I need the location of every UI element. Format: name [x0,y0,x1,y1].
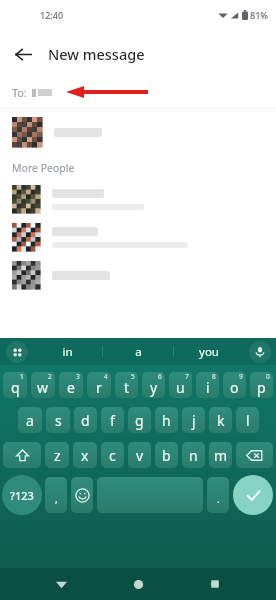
staticText: 2 [48,372,52,381]
staticText: 4 [104,372,108,381]
staticText: p [257,378,266,397]
button[interactable]: Send [233,475,273,515]
button[interactable]: . [207,477,229,513]
button[interactable]: y [142,372,165,398]
button[interactable] [0,117,276,147]
staticText: j [192,411,196,430]
staticText: c [109,446,116,465]
button[interactable]: s [46,407,70,433]
staticText: e [67,378,75,397]
button[interactable]: f [101,407,124,433]
staticText: b [162,446,171,465]
button[interactable]: z [45,442,69,468]
staticText: x [81,446,89,465]
button[interactable]: t [115,372,138,398]
staticText: r [96,378,102,397]
staticText: o [230,378,239,397]
button[interactable] [0,223,276,251]
button[interactable]: a [18,407,42,433]
button[interactable]: , [45,477,67,513]
button[interactable]: a [103,338,173,365]
staticText: a [135,344,142,360]
button[interactable]: w [31,372,55,398]
button[interactable]: you [174,338,244,365]
staticText: k [217,411,225,430]
button[interactable] [0,185,276,213]
button[interactable]: Backspace [236,442,273,468]
staticText: u [176,378,185,397]
staticText: 81% [250,9,268,21]
staticText: s [55,411,62,430]
button[interactable]: Home [125,571,151,597]
button[interactable]: h [155,407,178,433]
button[interactable]: r [87,372,111,398]
button[interactable]: Space [97,477,203,513]
staticText: f [110,411,115,430]
button[interactable]: k [209,407,232,433]
button[interactable]: j [182,407,205,433]
button[interactable]: Shift [3,442,41,468]
staticText: 1 [20,372,24,381]
button[interactable]: b [155,442,178,468]
staticText: z [54,446,61,465]
button[interactable]: i [196,372,219,398]
button[interactable]: Voice input [249,341,271,363]
staticText: 3 [76,372,80,381]
button[interactable]: in [32,338,102,365]
staticText: More People [12,161,75,175]
staticText: you [199,344,219,360]
staticText: h [162,411,171,430]
staticText: l [246,411,250,430]
button[interactable]: To: [0,76,276,108]
staticText: i [206,378,210,397]
button[interactable]: v [128,442,151,468]
button[interactable]: Keyboard options [6,341,28,363]
staticText: ?123 [10,488,34,503]
staticText: , [55,492,58,506]
staticText: 9 [239,372,243,381]
staticText: w [37,378,49,397]
staticText: 7 [185,372,189,381]
button[interactable]: m [209,442,232,468]
staticText: v [136,446,144,465]
button[interactable]: c [101,442,124,468]
staticText: a [26,411,34,430]
button[interactable]: ?123 [2,475,42,515]
staticText: g [135,411,144,430]
staticText: t [124,378,130,397]
staticText: 6 [158,372,162,381]
button[interactable]: e [59,372,83,398]
staticText: . [217,492,220,506]
button[interactable] [0,261,276,289]
staticText: y [150,378,158,397]
button[interactable]: n [182,442,205,468]
button[interactable]: Recents [202,571,228,597]
button[interactable]: Back [10,41,36,67]
button[interactable]: l [236,407,259,433]
staticText: To: [12,85,27,100]
staticText: New message [48,44,145,64]
staticText: q [11,378,20,397]
staticText: in [62,344,73,360]
staticText: n [189,446,198,465]
button[interactable]: q [3,372,27,398]
button[interactable]: o [223,372,246,398]
button[interactable]: g [128,407,151,433]
button[interactable]: Emoji [71,477,93,513]
staticText: 12:40 [40,9,64,21]
staticText: m [214,446,228,465]
button[interactable]: d [74,407,97,433]
button[interactable]: p [250,372,273,398]
button[interactable]: u [169,372,192,398]
staticText: 0 [266,372,270,381]
button[interactable]: x [73,442,97,468]
staticText: 5 [131,372,135,381]
button[interactable]: Back [48,571,74,597]
staticText: d [81,411,90,430]
staticText: 8 [212,372,216,381]
